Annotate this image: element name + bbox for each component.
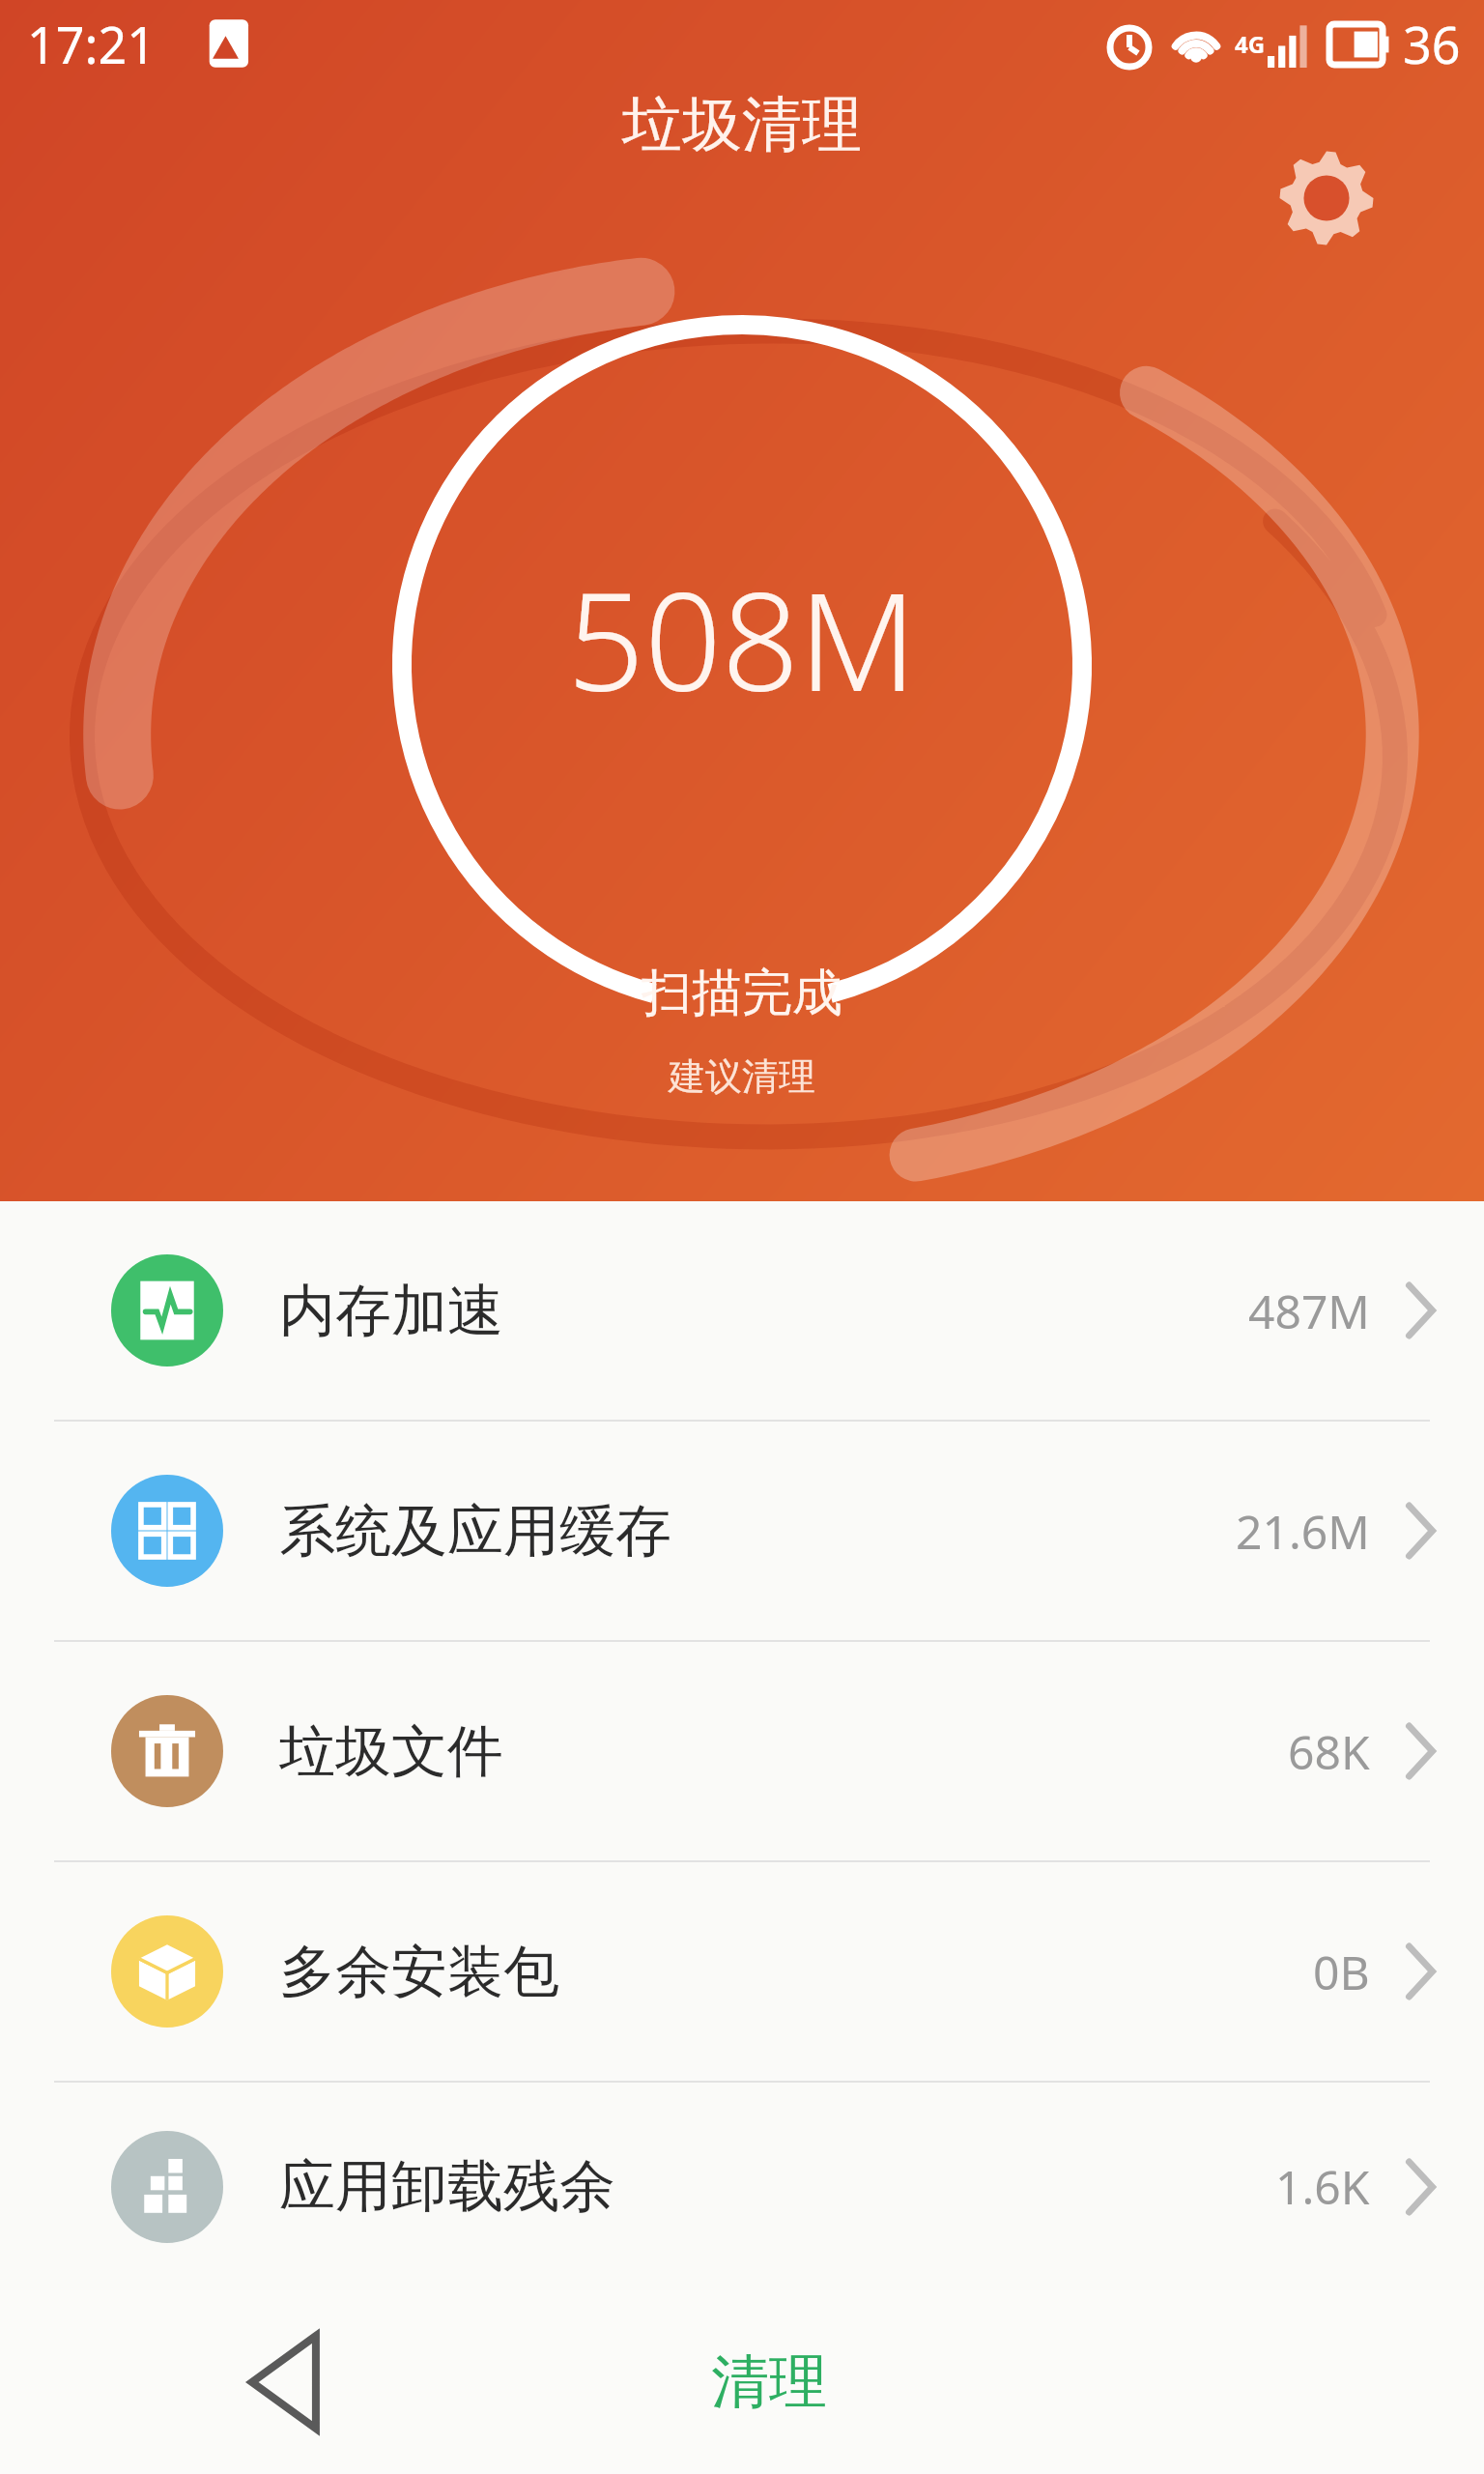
staticText: 垃圾文件: [279, 1716, 503, 1787]
staticText: 应用卸载残余: [279, 2151, 615, 2222]
staticText: 1.6K: [1275, 2155, 1370, 2218]
button[interactable]: 多余安装包: [0, 1862, 1484, 2081]
staticText: 清理: [711, 2345, 827, 2419]
staticText: 17:21: [27, 10, 156, 78]
staticText: 487M: [1248, 1280, 1370, 1342]
button[interactable]: 清理: [672, 2326, 866, 2438]
button[interactable]: 系统及应用缓存: [0, 1422, 1484, 1640]
staticText: 建议清理: [669, 1053, 815, 1100]
staticText: 0B: [1313, 1941, 1370, 2003]
staticText: 68K: [1288, 1720, 1370, 1783]
button[interactable]: 应用卸载残余: [0, 2083, 1484, 2290]
staticText: 21.6M: [1236, 1500, 1370, 1563]
button[interactable]: 内存加速: [0, 1201, 1484, 1420]
staticText: 扫描完成: [642, 962, 842, 1025]
button[interactable]: 垃圾文件: [0, 1642, 1484, 1860]
staticText: 系统及应用缓存: [279, 1496, 671, 1567]
staticText: 内存加速: [279, 1276, 503, 1346]
staticText: 36: [1403, 10, 1461, 78]
button[interactable]: 返回: [208, 2305, 362, 2460]
staticText: 4G: [1235, 28, 1266, 60]
staticText: 508M: [567, 546, 917, 731]
button[interactable]: 设置: [1261, 132, 1392, 264]
staticText: 多余安装包: [279, 1937, 559, 2007]
staticText: 垃圾清理: [622, 87, 862, 162]
